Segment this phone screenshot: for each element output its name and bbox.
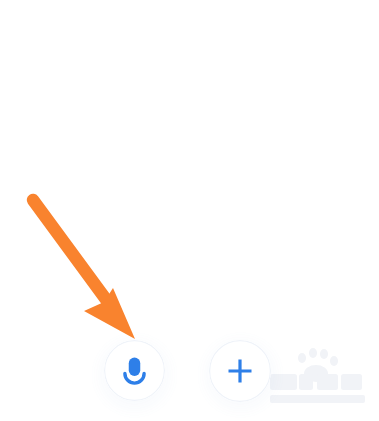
button[interactable]: Voice input <box>104 340 165 401</box>
button[interactable]: Add <box>209 340 271 402</box>
